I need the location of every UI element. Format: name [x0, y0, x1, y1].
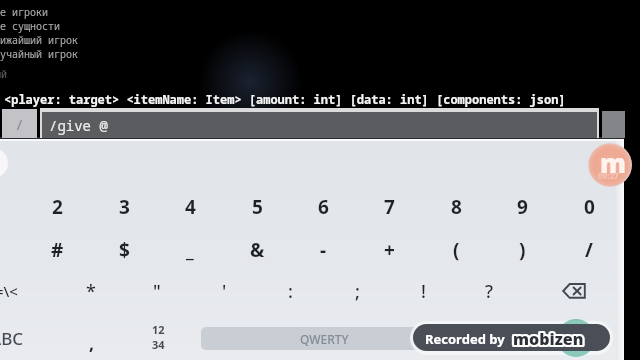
staticText: &	[250, 237, 265, 263]
staticText: mobizen	[513, 328, 584, 350]
staticText: 4	[185, 194, 196, 220]
staticText: "	[153, 279, 161, 304]
staticText: )	[519, 237, 526, 263]
staticText: Recorded by	[425, 330, 505, 348]
staticText: Все игроки	[0, 5, 48, 19]
staticText: /give @	[49, 116, 108, 135]
staticText: 5	[252, 194, 263, 220]
button[interactable]: 7	[358, 186, 420, 228]
button[interactable]: /	[558, 229, 620, 271]
button[interactable]: ?	[458, 270, 520, 312]
staticText: ;	[355, 279, 360, 304]
staticText: 12	[152, 322, 165, 337]
staticText: 2	[52, 194, 63, 220]
staticText: 7	[384, 194, 395, 220]
button[interactable]: &	[226, 229, 288, 271]
button[interactable]: 9	[491, 186, 553, 228]
staticText: !	[421, 279, 426, 304]
staticText: :	[288, 279, 293, 304]
button[interactable]: /give @	[40, 108, 599, 138]
button[interactable]: Backspace	[543, 270, 605, 312]
button[interactable]: ,	[61, 322, 123, 360]
staticText: mobizen	[513, 328, 584, 350]
staticText: /	[585, 237, 593, 263]
button[interactable]: -	[292, 229, 354, 271]
staticText: '	[222, 279, 227, 304]
staticText: Случайный игрок	[0, 47, 78, 61]
staticText: ый	[0, 67, 7, 81]
button[interactable]: =\<	[0, 270, 37, 312]
button[interactable]: "	[126, 270, 188, 312]
staticText: m	[600, 145, 627, 180]
staticText: =\<	[0, 281, 18, 301]
button[interactable]: Mobizen recorder	[588, 143, 632, 187]
button[interactable]: !	[392, 270, 454, 312]
button[interactable]: $	[93, 229, 155, 271]
button[interactable]: 8	[425, 186, 487, 228]
staticText: 8	[451, 194, 462, 220]
button[interactable]: +	[358, 229, 420, 271]
staticText: #	[51, 237, 64, 263]
button[interactable]: 2	[26, 186, 88, 228]
button[interactable]: 6	[292, 186, 354, 228]
button[interactable]: *	[60, 270, 122, 312]
button[interactable]: 5	[226, 186, 288, 228]
button[interactable]: )	[491, 229, 553, 271]
button[interactable]: 4	[159, 186, 221, 228]
staticText: ,	[89, 331, 95, 356]
button[interactable]: #	[26, 229, 88, 271]
staticText: <player: target> <itemName: Item> [amoun…	[4, 91, 566, 107]
staticText: 34	[152, 337, 165, 352]
button[interactable]: 3	[93, 186, 155, 228]
staticText: *	[86, 279, 96, 304]
button[interactable]: 0	[558, 186, 620, 228]
staticText: QWERTY	[300, 331, 349, 347]
button[interactable]: '	[193, 270, 255, 312]
staticText: 9	[517, 194, 528, 220]
staticText: (	[453, 237, 460, 263]
staticText: 3	[119, 194, 130, 220]
staticText: _	[186, 237, 194, 263]
staticText: 09:27	[598, 170, 619, 181]
staticText: /	[15, 114, 25, 134]
staticText: -	[320, 237, 327, 263]
staticText: ?	[485, 279, 494, 304]
button[interactable]: _	[159, 229, 221, 271]
staticText: Ближайший игрок	[0, 33, 78, 47]
button[interactable]: Number pad	[127, 316, 189, 358]
button[interactable]: :	[259, 270, 321, 312]
button[interactable]: QWERTY	[201, 327, 447, 350]
staticText: Все сущности	[0, 19, 60, 33]
staticText: ABC	[0, 327, 24, 350]
button[interactable]: /	[2, 109, 37, 138]
staticText: 6	[318, 194, 329, 220]
button[interactable]: ;	[326, 270, 388, 312]
staticText: 0	[584, 194, 595, 220]
staticText: $	[119, 237, 130, 263]
button[interactable]: Recorded by Mobizen	[413, 324, 610, 351]
button[interactable]: ABC	[0, 317, 38, 359]
staticText: +	[384, 237, 395, 263]
button[interactable]: (	[425, 229, 487, 271]
